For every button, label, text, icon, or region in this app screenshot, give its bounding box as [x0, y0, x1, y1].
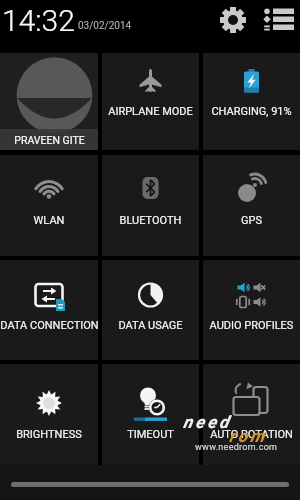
button[interactable] [218, 5, 248, 35]
button[interactable]: CHARGING, 91% [203, 53, 300, 150]
button[interactable]: AIRPLANE MODE [102, 53, 199, 150]
staticText: TIMEOUT [102, 428, 199, 441]
button[interactable]: AUTO ROTATION [203, 364, 300, 465]
staticText: DATA CONNECTION [0, 319, 98, 332]
button[interactable]: DATA CONNECTION [0, 260, 98, 360]
staticText: PRAVEEN GITE [14, 134, 85, 146]
staticText: WLAN [0, 214, 98, 227]
staticText: GPS [203, 214, 300, 227]
staticText: BLUETOOTH [102, 214, 199, 227]
button[interactable]: TIMEOUT [102, 364, 199, 465]
button[interactable]: WLAN [0, 155, 98, 256]
button[interactable] [260, 4, 298, 37]
staticText: 03/02/2014 [78, 20, 132, 32]
staticText: rom [229, 426, 268, 446]
staticText: AIRPLANE MODE [102, 105, 199, 118]
button[interactable]: BLUETOOTH [102, 155, 199, 256]
staticText: 14:32 [2, 3, 75, 38]
staticText: www.needrom.com [195, 442, 278, 453]
staticText: BRIGHTNESS [0, 428, 98, 441]
button[interactable]: PRAVEEN GITE [0, 53, 98, 150]
staticText: AUTO ROTATION [203, 428, 300, 441]
button[interactable]: AUDIO PROFILES [203, 260, 300, 360]
button[interactable]: GPS [203, 155, 300, 256]
staticText: CHARGING, 91% [203, 105, 300, 118]
button[interactable]: DATA USAGE [102, 260, 199, 360]
staticText: AUDIO PROFILES [203, 319, 300, 332]
staticText: DATA USAGE [102, 319, 199, 332]
staticText: need [183, 412, 232, 432]
button[interactable]: BRIGHTNESS [0, 364, 98, 465]
